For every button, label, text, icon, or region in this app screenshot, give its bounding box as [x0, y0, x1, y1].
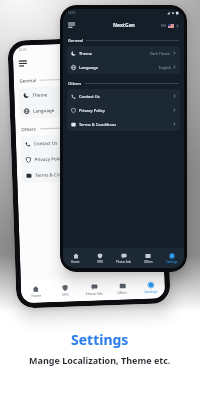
button[interactable]: Terms & Conditions — [21, 163, 156, 183]
button[interactable]: Phone Ads — [112, 253, 136, 264]
staticText: Offers — [117, 290, 127, 295]
button[interactable]: VPN — [88, 253, 112, 264]
staticText: Settings — [166, 260, 178, 264]
staticText: English — [159, 65, 171, 70]
button[interactable]: Privacy Policy — [67, 103, 180, 117]
staticText: Contact Us — [79, 94, 100, 99]
button[interactable]: Theme — [18, 82, 153, 103]
staticText: Terms & Conditions — [79, 122, 117, 127]
staticText: Settings — [71, 330, 129, 349]
button[interactable]: Theme — [67, 46, 180, 60]
staticText: Light Theme — [119, 88, 143, 95]
staticText: Offers — [144, 260, 153, 264]
button[interactable]: Offers — [136, 253, 160, 264]
button[interactable]: Contact Us — [20, 131, 155, 152]
staticText: Language — [33, 107, 54, 114]
button[interactable]: Settings — [160, 253, 184, 264]
button[interactable]: Contact Us — [67, 89, 180, 103]
staticText: VPN — [62, 292, 69, 297]
staticText: 12:51 — [68, 11, 76, 15]
button[interactable]: Settings — [136, 281, 165, 294]
staticText: Language — [79, 65, 98, 70]
button[interactable]: Phone Ads — [80, 283, 108, 296]
staticText: VPN — [97, 260, 103, 264]
staticText: Theme — [32, 92, 48, 98]
staticText: Dark Theme — [150, 51, 171, 56]
button[interactable]: Privacy Policy — [21, 147, 156, 167]
staticText: Others — [21, 126, 37, 132]
staticText: General — [19, 78, 36, 84]
staticText: Home — [71, 260, 80, 264]
staticText: Phone Ads — [116, 260, 132, 264]
button[interactable]: EN — [161, 23, 179, 28]
staticText: NextGen — [113, 22, 135, 29]
staticText: Others — [68, 81, 82, 86]
staticText: 12:51 — [18, 47, 27, 52]
button[interactable] — [19, 60, 28, 67]
staticText: Settings — [144, 289, 158, 294]
button[interactable]: Home — [21, 285, 51, 298]
staticText: Terms & Conditions — [35, 171, 78, 178]
staticText: Mange Localization, Theme etc. — [29, 354, 171, 366]
staticText: General — [68, 38, 83, 43]
button[interactable]: Home — [63, 253, 88, 264]
button[interactable]: Offers — [108, 282, 137, 295]
button[interactable] — [68, 22, 76, 28]
staticText: Privacy Policy — [79, 108, 105, 113]
staticText: Phone Ads — [86, 291, 104, 296]
staticText: Home — [31, 293, 42, 298]
staticText: NextGen — [73, 57, 98, 66]
staticText: Contact Us — [34, 140, 58, 147]
staticText: Privacy Policy — [34, 156, 64, 162]
staticText: EN — [161, 23, 166, 28]
button[interactable]: Terms & Conditions — [67, 117, 180, 131]
staticText: Theme — [79, 51, 93, 56]
button[interactable]: VPN — [50, 284, 80, 297]
button[interactable]: Language — [19, 98, 154, 119]
button[interactable]: Language — [67, 60, 180, 74]
